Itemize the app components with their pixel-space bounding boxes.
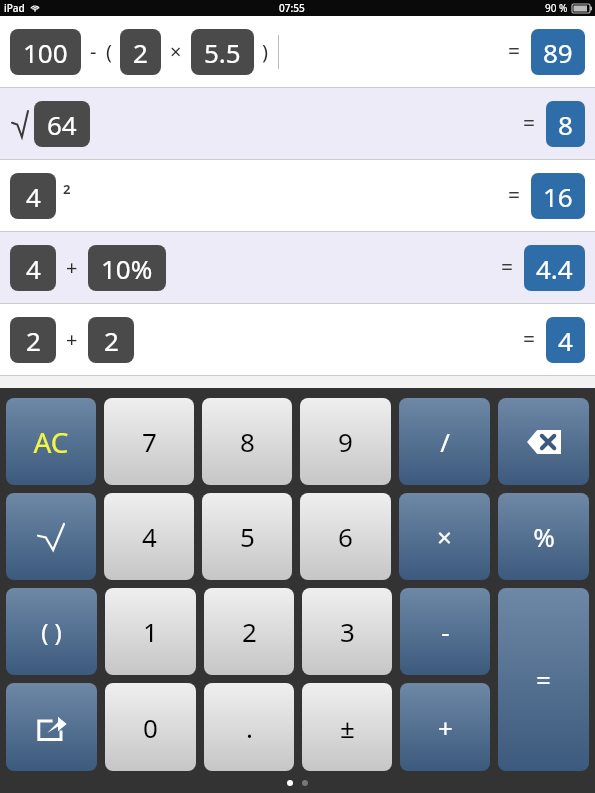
button[interactable]: 64 [47, 101, 77, 147]
staticText: . [246, 710, 253, 745]
staticText: 2 [133, 35, 148, 70]
button[interactable]: Equals [498, 588, 589, 771]
staticText: + [66, 254, 78, 281]
staticText: = [508, 37, 521, 66]
staticText: ( ) [41, 615, 62, 648]
staticText: 16 [543, 179, 573, 214]
staticText: / [440, 424, 450, 459]
button[interactable]: Divide [399, 398, 490, 485]
staticText: = [523, 109, 536, 138]
staticText: = [501, 253, 514, 282]
staticText: 9 [338, 424, 353, 459]
staticText: iPad [4, 1, 25, 15]
button[interactable]: 2 [133, 29, 148, 75]
button[interactable]: 2 [23, 317, 43, 363]
button[interactable]: 4.4 [536, 245, 573, 291]
button[interactable]: Plus [400, 683, 490, 771]
staticText: 0 [143, 710, 158, 745]
button[interactable]: 4 [0, 232, 595, 303]
button[interactable]: Share [6, 683, 97, 771]
staticText: 4.4 [536, 251, 573, 286]
staticText: 4 [26, 251, 41, 286]
staticText: - [441, 614, 450, 649]
button[interactable]: AC [6, 398, 96, 485]
button[interactable]: 0 [105, 683, 196, 771]
button[interactable]: 7 [104, 398, 194, 485]
staticText: + [438, 710, 453, 745]
button[interactable]: 64 [0, 88, 595, 159]
staticText: 2 [26, 323, 41, 358]
button[interactable]: 4 [104, 493, 194, 580]
button[interactable]: 2 [0, 304, 595, 375]
staticText: 1 [143, 614, 158, 649]
button[interactable]: 3 [302, 588, 392, 675]
staticText: ( [106, 38, 112, 65]
staticText: 4 [26, 179, 41, 214]
staticText: 5.5 [204, 35, 241, 70]
staticText: 90 % [545, 1, 568, 15]
staticText: × [437, 519, 452, 554]
button[interactable]: 5.5 [204, 29, 241, 75]
staticText: 89 [543, 35, 573, 70]
staticText: % [533, 519, 555, 554]
button[interactable]: 100 [0, 16, 595, 87]
button[interactable]: 89 [543, 29, 573, 75]
staticText: = [508, 181, 521, 210]
staticText: 4 [558, 323, 573, 358]
button[interactable]: Square root [6, 493, 96, 580]
staticText: = [536, 662, 551, 697]
staticText: 8 [558, 107, 573, 142]
button[interactable]: 2 [101, 317, 121, 363]
staticText: 10% [101, 251, 153, 286]
button[interactable]: 8 [558, 101, 573, 147]
button[interactable]: 9 [300, 398, 391, 485]
staticText: AC [33, 423, 69, 461]
button[interactable]: Backspace [498, 398, 589, 485]
staticText: - [90, 38, 97, 65]
staticText: 3 [340, 614, 355, 649]
staticText: 07:55 [279, 1, 305, 15]
staticText: 2 [63, 180, 71, 198]
staticText: + [66, 326, 78, 353]
staticText: 2 [104, 323, 119, 358]
button[interactable]: 4 [0, 160, 595, 231]
staticText: 8 [240, 424, 255, 459]
button[interactable]: Multiply [399, 493, 490, 580]
button[interactable]: Parentheses [6, 588, 97, 675]
button[interactable]: ± [302, 683, 392, 771]
button[interactable]: 16 [543, 173, 573, 219]
button[interactable]: . [204, 683, 294, 771]
staticText: = [523, 325, 536, 354]
staticText: 64 [47, 107, 77, 142]
staticText: 5 [240, 519, 255, 554]
staticText: 7 [142, 424, 157, 459]
staticText: × [170, 38, 182, 65]
staticText: ) [262, 38, 268, 65]
button[interactable]: 8 [202, 398, 292, 485]
button[interactable]: 100 [23, 29, 68, 75]
staticText: 100 [23, 35, 68, 70]
button[interactable]: 5 [202, 493, 292, 580]
staticText: ± [340, 710, 355, 745]
staticText: 4 [142, 519, 157, 554]
staticText: 6 [338, 519, 353, 554]
button[interactable]: 4 [23, 173, 43, 219]
button[interactable]: 4 [558, 317, 573, 363]
button[interactable]: Percent [498, 493, 589, 580]
button[interactable]: 4 [23, 245, 43, 291]
button[interactable]: 6 [300, 493, 391, 580]
button[interactable]: 1 [105, 588, 196, 675]
staticText: 2 [242, 614, 257, 649]
button[interactable]: 10% [101, 245, 153, 291]
button[interactable]: 2 [204, 588, 294, 675]
button[interactable]: Minus [400, 588, 490, 675]
